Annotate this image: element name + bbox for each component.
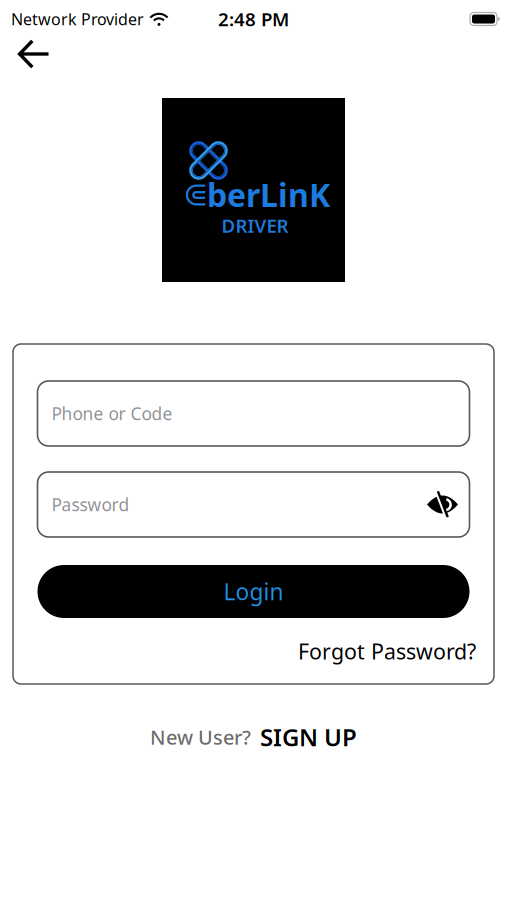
- staticText: SIGN UP: [260, 721, 357, 753]
- staticText: Password: [51, 493, 129, 516]
- staticText: berLinK: [207, 173, 330, 216]
- staticText: Phone or Code: [51, 402, 172, 425]
- staticText: New User?: [150, 724, 251, 750]
- staticText: Forgot Password?: [298, 637, 476, 665]
- button[interactable]: Login: [37, 565, 469, 618]
- button[interactable]: Show password: [418, 482, 458, 526]
- staticText: Network Provider: [11, 8, 144, 30]
- staticText: 2:48 PM: [218, 7, 289, 31]
- staticText: Login: [223, 576, 283, 606]
- staticText: DRIVER: [221, 213, 288, 238]
- button[interactable]: SIGN UP: [260, 721, 357, 753]
- button[interactable]: Back: [0, 32, 62, 76]
- button[interactable]: Forgot Password?: [298, 633, 476, 669]
